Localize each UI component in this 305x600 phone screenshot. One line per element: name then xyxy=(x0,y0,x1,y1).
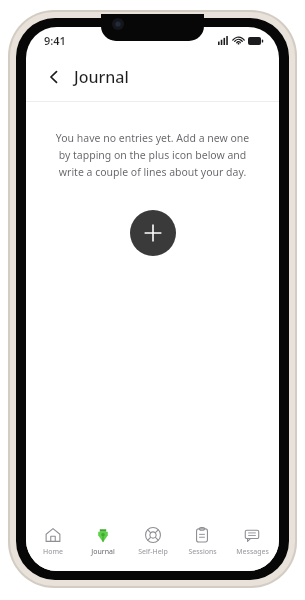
button[interactable]: Self-Help xyxy=(130,525,176,559)
staticText: Messages xyxy=(236,547,269,557)
staticText: Self-Help xyxy=(138,547,168,557)
button[interactable]: Back xyxy=(40,63,68,91)
staticText: Home xyxy=(43,547,63,557)
staticText: Journal xyxy=(91,547,115,557)
button[interactable]: Sessions xyxy=(179,525,225,559)
button[interactable]: Add new journal entry xyxy=(130,210,176,256)
staticText: 9:41 xyxy=(44,33,66,48)
staticText: Sessions xyxy=(188,547,217,557)
staticText: You have no entries yet. Add a new one b… xyxy=(51,131,254,179)
button[interactable]: Journal xyxy=(80,525,126,559)
button[interactable]: Messages xyxy=(229,525,275,559)
staticText: Journal xyxy=(74,66,129,88)
button[interactable]: Home xyxy=(30,525,76,559)
